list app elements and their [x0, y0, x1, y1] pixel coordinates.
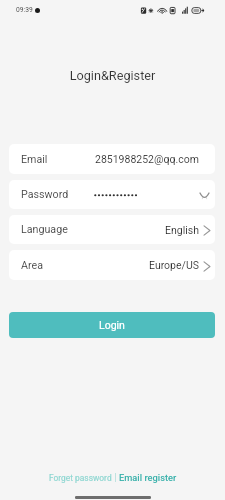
button[interactable]: Email register	[119, 472, 177, 483]
staticText: Login&Register	[0, 68, 225, 83]
staticText: Password	[21, 188, 69, 201]
staticText: Forget password	[49, 473, 112, 483]
staticText: Language	[21, 223, 68, 236]
staticText: Area	[21, 259, 43, 272]
staticText: 09:39	[16, 6, 33, 14]
staticText: Email	[21, 153, 48, 166]
button[interactable]: Password	[9, 180, 215, 209]
button[interactable]: Email	[9, 144, 215, 174]
staticText: Email register	[119, 472, 177, 483]
button[interactable]: Login	[9, 312, 215, 338]
button[interactable]: Language	[9, 215, 215, 244]
button[interactable]: Area	[9, 250, 215, 280]
button[interactable]: Forget password	[49, 473, 112, 483]
staticText: 2851988252@qq.com	[95, 153, 199, 165]
staticText: Europe/US	[149, 259, 199, 271]
staticText: English	[165, 224, 199, 236]
staticText: Login	[99, 319, 125, 331]
button[interactable]: Show password	[197, 188, 211, 202]
